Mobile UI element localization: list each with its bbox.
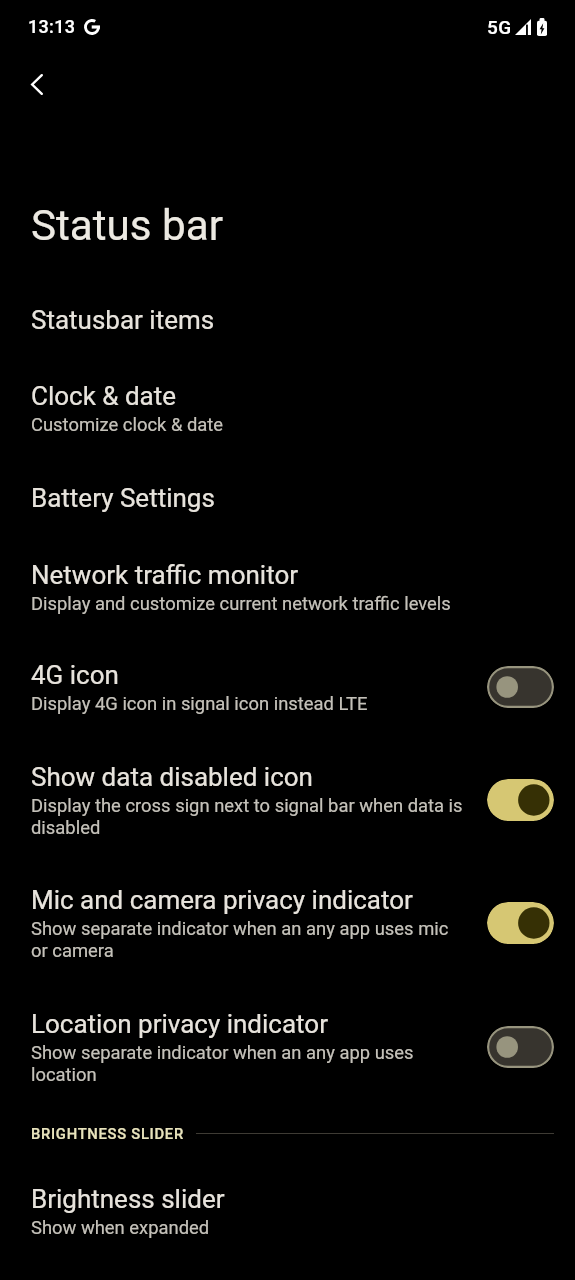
- button[interactable]: Mic and camera privacy indicator: [0, 862, 575, 985]
- staticText: Show separate indicator when an any app …: [31, 1042, 463, 1086]
- button[interactable]: Toggle off: [487, 666, 554, 708]
- staticText: Status bar: [31, 200, 224, 250]
- button[interactable]: Toggle on: [487, 779, 554, 821]
- staticText: 5G: [487, 16, 512, 38]
- staticText: Clock & date: [31, 381, 177, 411]
- button[interactable]: Toggle on: [487, 902, 554, 944]
- staticText: Customize clock & date: [31, 414, 224, 436]
- button[interactable]: Clock & date: [0, 358, 575, 459]
- staticText: Show separate indicator when an any app …: [31, 918, 463, 962]
- button[interactable]: Toggle off: [487, 1026, 554, 1068]
- staticText: Network traffic monitor: [31, 560, 299, 590]
- button[interactable]: 4G icon: [0, 638, 575, 738]
- button[interactable]: Location privacy indicator: [0, 985, 575, 1109]
- staticText: Display 4G icon in signal icon instead L…: [31, 693, 368, 715]
- button[interactable]: Statusbar items: [0, 282, 575, 358]
- staticText: Display and customize current network tr…: [31, 593, 451, 615]
- staticText: Show data disabled icon: [31, 762, 313, 792]
- staticText: Brightness slider: [31, 1184, 225, 1214]
- button[interactable]: Back: [11, 58, 63, 110]
- button[interactable]: Network traffic monitor: [0, 536, 575, 638]
- button[interactable]: Show data disabled icon: [0, 738, 575, 862]
- staticText: BRIGHTNESS SLIDER: [31, 1124, 184, 1143]
- staticText: Battery Settings: [31, 483, 215, 513]
- staticText: Location privacy indicator: [31, 1009, 328, 1039]
- staticText: Display the cross sign next to signal ba…: [31, 795, 463, 839]
- staticText: Statusbar items: [31, 305, 215, 335]
- staticText: 13:13: [28, 16, 76, 37]
- button[interactable]: Battery Settings: [0, 459, 575, 536]
- button[interactable]: Brightness slider: [0, 1160, 575, 1262]
- staticText: Mic and camera privacy indicator: [31, 885, 413, 915]
- staticText: Show when expanded: [31, 1217, 210, 1239]
- staticText: 4G icon: [31, 660, 119, 690]
